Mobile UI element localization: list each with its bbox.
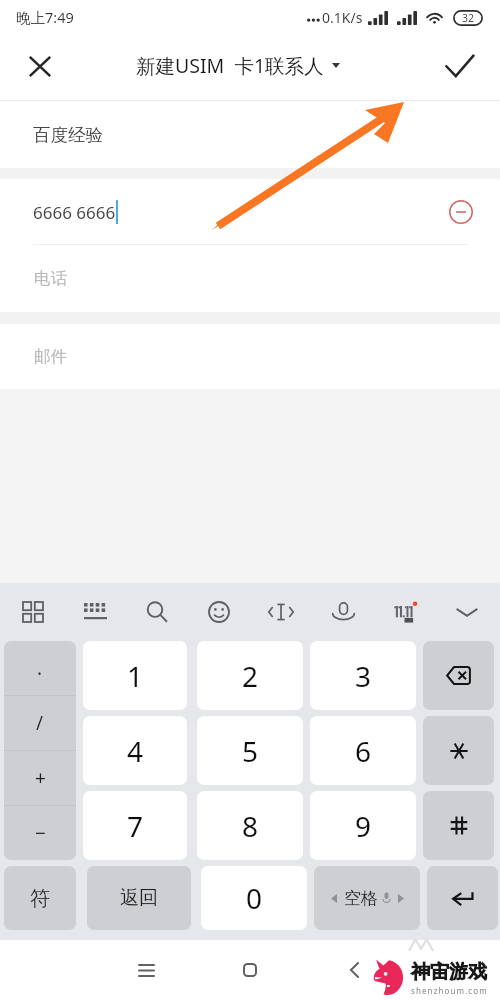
button[interactable]: . (4, 641, 76, 695)
button[interactable]: Theme (385, 589, 425, 635)
staticText: 8 (242, 807, 259, 845)
button[interactable]: 3 (310, 641, 416, 710)
staticText: − (35, 820, 46, 846)
button[interactable]: Remove phone number (441, 192, 481, 232)
staticText: 晚上7:49 (16, 7, 74, 27)
staticText: 1 (127, 657, 144, 695)
staticText: / (36, 710, 44, 736)
staticText: 6666 6666 (33, 201, 116, 224)
staticText: 神宙游戏 (411, 960, 487, 984)
button[interactable]: 符 (4, 866, 76, 930)
button[interactable]: 1 (83, 641, 187, 710)
button[interactable]: Enter (427, 866, 498, 930)
staticText: 0.1K/s (322, 8, 363, 27)
button[interactable]: Voice input (323, 589, 363, 635)
button[interactable]: Back (330, 946, 378, 994)
staticText: 返回 (120, 886, 158, 910)
button[interactable]: 邮件 (0, 324, 500, 389)
button[interactable]: 电话 (0, 245, 500, 312)
button[interactable]: Home (226, 946, 274, 994)
staticText: 4 (127, 732, 144, 770)
button[interactable]: 2 (197, 641, 303, 710)
button[interactable]: / (4, 696, 76, 750)
button[interactable]: 6666 6666 (0, 179, 500, 245)
button[interactable]: Apps (13, 589, 53, 635)
button[interactable]: 5 (197, 716, 303, 785)
button[interactable]: 百度经验 (0, 101, 500, 168)
button[interactable]: Move cursor (261, 589, 301, 635)
button[interactable]: + (4, 751, 76, 805)
button[interactable]: 9 (310, 791, 416, 860)
button[interactable]: Save (434, 39, 486, 91)
button[interactable]: Emoji (199, 589, 239, 635)
button[interactable]: Keyboard layout (75, 589, 115, 635)
button[interactable]: Search (137, 589, 177, 635)
button[interactable]: Close (14, 40, 66, 92)
staticText: 32 (462, 11, 475, 25)
staticText: . (37, 655, 43, 681)
button[interactable]: Recent apps (122, 946, 170, 994)
button[interactable]: 6 (310, 716, 416, 785)
staticText: 5 (242, 732, 259, 770)
button[interactable]: 新建USIM 卡1联系人 (136, 52, 340, 79)
staticText: 9 (355, 807, 372, 845)
staticText: 符 (30, 886, 50, 911)
staticText: shenzhoum.com (411, 985, 488, 996)
button[interactable]: Hash (423, 791, 494, 860)
button[interactable]: 8 (197, 791, 303, 860)
staticText: 百度经验 (33, 124, 103, 146)
staticText: 新建USIM 卡1联系人 (136, 52, 324, 79)
button[interactable]: 7 (83, 791, 187, 860)
button[interactable]: − (4, 806, 76, 860)
button[interactable]: 空格 (314, 866, 420, 930)
staticText: 7 (127, 807, 144, 845)
button[interactable]: 4 (83, 716, 187, 785)
staticText: + (35, 765, 46, 791)
button[interactable]: Star (423, 716, 494, 785)
button[interactable]: Hide keyboard (447, 589, 487, 635)
staticText: 3 (355, 657, 372, 695)
staticText: 电话 (34, 268, 67, 289)
staticText: 2 (242, 657, 259, 695)
staticText: 邮件 (34, 346, 67, 367)
button[interactable]: Backspace (423, 641, 494, 710)
button[interactable]: 返回 (87, 866, 191, 930)
staticText: 6 (355, 732, 372, 770)
staticText: 空格 (344, 888, 378, 909)
staticText: 0 (246, 879, 263, 917)
button[interactable]: 0 (201, 866, 307, 930)
